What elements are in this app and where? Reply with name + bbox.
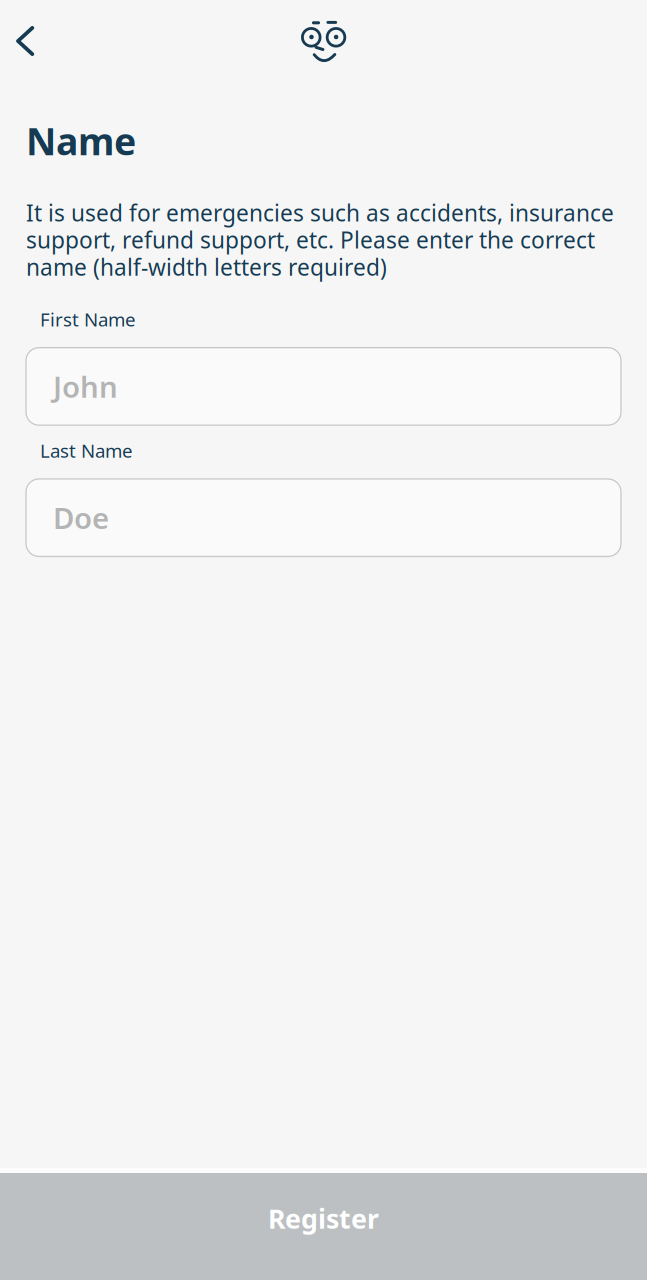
button[interactable]: Back — [0, 14, 50, 68]
staticText: First Name — [40, 307, 136, 332]
button[interactable]: John — [26, 348, 621, 425]
staticText: Name — [26, 116, 136, 166]
button[interactable]: Register — [0, 1173, 647, 1280]
staticText: Last Name — [40, 438, 133, 463]
staticText: name (half-width letters required) — [26, 252, 387, 282]
staticText: support, refund support, etc. Please ent… — [26, 225, 595, 255]
staticText: John — [53, 367, 118, 406]
button[interactable]: Doe — [26, 479, 621, 556]
staticText: Register — [268, 1201, 379, 1236]
staticText: It is used for emergencies such as accid… — [26, 198, 614, 228]
staticText: Doe — [53, 498, 109, 537]
